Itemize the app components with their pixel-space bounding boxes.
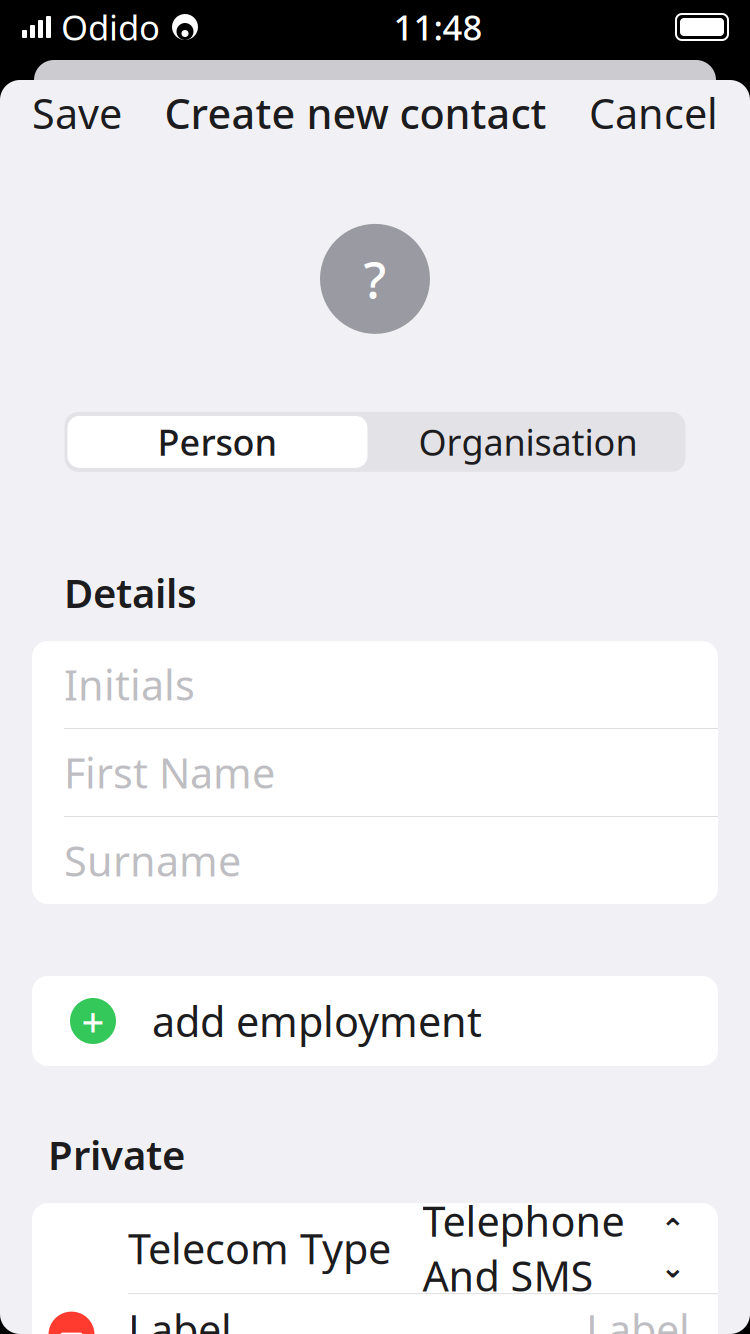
staticText: Telecom Type (128, 1221, 391, 1276)
staticText: + (81, 994, 104, 1047)
button[interactable]: Remove (48, 1312, 94, 1334)
staticText: 11:48 (393, 4, 482, 50)
staticText: ? (363, 245, 386, 312)
button[interactable]: Save (0, 73, 154, 152)
button[interactable]: Organisation (370, 412, 685, 472)
button[interactable]: Add contact photo (320, 224, 430, 334)
staticText: ⌄ (660, 1251, 685, 1284)
staticText: Person (157, 418, 277, 466)
staticText: Save (32, 85, 122, 140)
staticText: Create new contact (164, 85, 546, 140)
button[interactable]: Person (64, 412, 370, 472)
button[interactable]: Initials (32, 641, 718, 729)
staticText: Surname (64, 833, 241, 888)
staticText: Odido (61, 4, 160, 50)
staticText: Label (586, 1302, 690, 1334)
button[interactable]: + (32, 976, 718, 1066)
button[interactable]: Cancel (557, 73, 750, 152)
staticText: Cancel (589, 85, 718, 140)
staticText: Private (48, 1128, 185, 1181)
staticText: First Name (64, 745, 275, 800)
staticText: Telephone And SMS (422, 1193, 624, 1303)
staticText: Initials (64, 657, 195, 712)
staticText: Details (64, 566, 197, 619)
button[interactable]: First Name (32, 729, 718, 817)
button[interactable]: Surname (32, 817, 718, 904)
staticText: ⌃ (660, 1212, 685, 1246)
staticText: add employment (152, 994, 482, 1048)
staticText: Organisation (418, 418, 637, 466)
button[interactable]: Telecom Type (32, 1203, 718, 1293)
staticText: Label (128, 1302, 232, 1334)
button[interactable]: Label (32, 1294, 718, 1334)
